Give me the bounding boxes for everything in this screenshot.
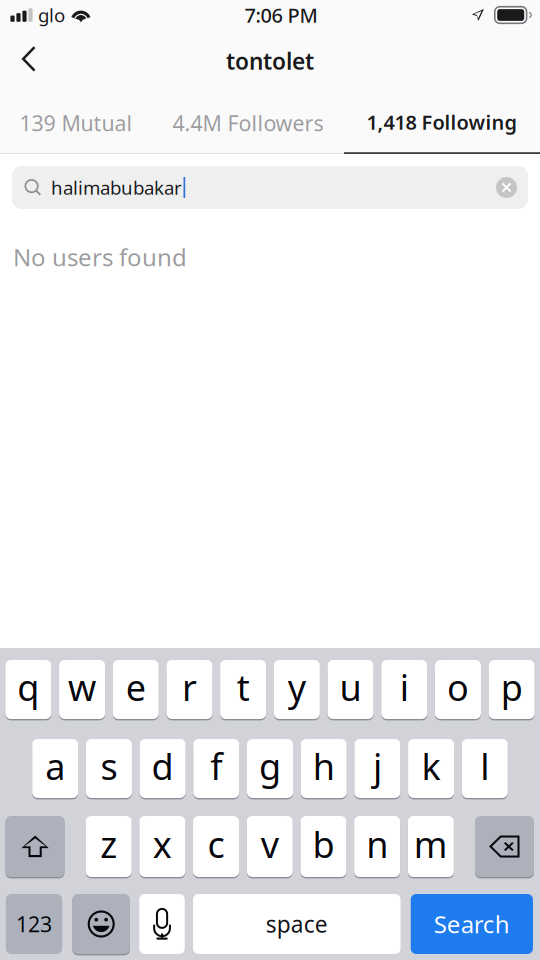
staticText: t <box>237 663 250 711</box>
staticText: x <box>153 820 172 868</box>
staticText: tontolet <box>226 46 314 76</box>
staticText: d <box>152 742 174 790</box>
staticText: w <box>68 663 96 711</box>
staticText: halimabubakar <box>51 175 182 200</box>
staticText: i <box>400 663 409 711</box>
button[interactable]: 139 Mutual <box>0 92 152 154</box>
button[interactable]: n <box>354 815 400 878</box>
button[interactable]: 1,418 Following <box>344 92 540 154</box>
button[interactable]: v <box>247 815 293 878</box>
button[interactable]: z <box>86 815 132 878</box>
staticText: j <box>373 742 382 790</box>
staticText: h <box>313 742 335 790</box>
staticText: f <box>210 742 222 790</box>
staticText: 7:06 PM <box>245 2 318 28</box>
button[interactable]: m <box>408 815 454 878</box>
button[interactable]: p <box>489 659 535 720</box>
button[interactable]: Search <box>411 894 533 954</box>
button[interactable]: c <box>193 815 239 878</box>
staticText: k <box>422 742 441 790</box>
staticText: glo <box>38 3 65 27</box>
staticText: g <box>259 742 281 790</box>
staticText: p <box>501 663 523 711</box>
button[interactable]: Dictation <box>139 894 185 954</box>
button[interactable]: Back <box>0 30 54 92</box>
button[interactable]: h <box>301 738 347 799</box>
staticText: a <box>45 742 65 790</box>
button[interactable]: y <box>274 659 320 720</box>
staticText: q <box>17 663 39 711</box>
staticText: r <box>182 663 197 711</box>
staticText: c <box>208 820 225 868</box>
staticText: v <box>261 820 279 868</box>
staticText: 4.4M Followers <box>172 109 323 137</box>
button[interactable]: w <box>59 659 105 720</box>
button[interactable]: 4.4M Followers <box>152 92 344 154</box>
staticText: y <box>288 663 306 711</box>
staticText: Search <box>434 908 510 940</box>
staticText: No users found <box>13 241 187 273</box>
button[interactable]: k <box>408 738 454 799</box>
button[interactable]: Delete <box>475 815 534 878</box>
button[interactable]: 123 <box>6 894 62 954</box>
staticText: 123 <box>16 910 52 938</box>
staticText: e <box>126 663 146 711</box>
button[interactable]: l <box>462 738 508 799</box>
button[interactable]: Emoji <box>72 893 130 955</box>
button[interactable]: f <box>193 738 239 799</box>
staticText: m <box>414 820 448 868</box>
button[interactable]: s <box>86 738 132 799</box>
staticText: u <box>340 663 362 711</box>
button[interactable]: t <box>220 659 266 720</box>
button[interactable]: o <box>435 659 481 720</box>
staticText: s <box>100 742 117 790</box>
button[interactable]: space <box>193 894 400 954</box>
staticText: space <box>266 909 328 939</box>
button[interactable]: i <box>381 659 427 720</box>
button[interactable]: e <box>113 659 159 720</box>
staticText: 1,418 Following <box>366 109 517 135</box>
button[interactable]: q <box>5 659 51 720</box>
staticText: b <box>312 820 334 868</box>
button[interactable]: r <box>166 659 212 720</box>
button[interactable]: d <box>140 738 186 799</box>
staticText: n <box>366 820 388 868</box>
button[interactable]: g <box>247 738 293 799</box>
staticText: o <box>447 663 469 711</box>
staticText: 139 Mutual <box>19 109 132 137</box>
button[interactable]: x <box>139 815 185 878</box>
staticText: z <box>100 820 117 868</box>
button[interactable]: a <box>32 738 78 799</box>
button[interactable]: Shift <box>5 815 64 878</box>
button[interactable]: u <box>328 659 374 720</box>
button[interactable]: b <box>300 815 346 878</box>
staticText: l <box>480 742 489 790</box>
button[interactable]: j <box>354 738 400 799</box>
